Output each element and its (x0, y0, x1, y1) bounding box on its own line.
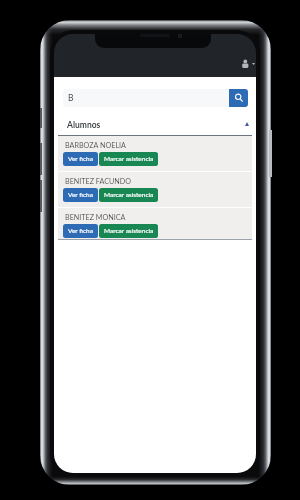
button[interactable]: Marcar asistencia (99, 188, 158, 202)
staticText: Ver ficha (68, 155, 93, 163)
button[interactable]: Ver ficha (63, 224, 98, 238)
button[interactable]: BENITEZ MONICA (58, 208, 252, 239)
button[interactable]: BENITEZ FACUNDO (58, 172, 252, 207)
staticText: Ver ficha (68, 191, 93, 199)
button[interactable]: Search (229, 89, 248, 107)
button[interactable]: BARBOZA NOELIA (58, 136, 252, 171)
button[interactable]: Marcar asistencia (99, 152, 158, 166)
button[interactable]: Marcar asistencia (99, 224, 158, 238)
button[interactable]: User account menu (237, 54, 256, 72)
staticText: Alumnos (67, 120, 101, 130)
staticText: Ver ficha (68, 227, 93, 235)
button[interactable]: Alumnos (58, 112, 252, 135)
staticText: BENITEZ FACUNDO (65, 177, 132, 186)
staticText: Marcar asistencia (104, 155, 154, 163)
staticText: B (68, 93, 74, 103)
button[interactable]: Ver ficha (63, 152, 98, 166)
staticText: Marcar asistencia (104, 191, 154, 199)
button[interactable]: Ver ficha (63, 188, 98, 202)
staticText: Marcar asistencia (104, 227, 154, 235)
button[interactable]: B (63, 89, 238, 107)
staticText: BENITEZ MONICA (65, 213, 126, 222)
staticText: BARBOZA NOELIA (65, 141, 126, 150)
